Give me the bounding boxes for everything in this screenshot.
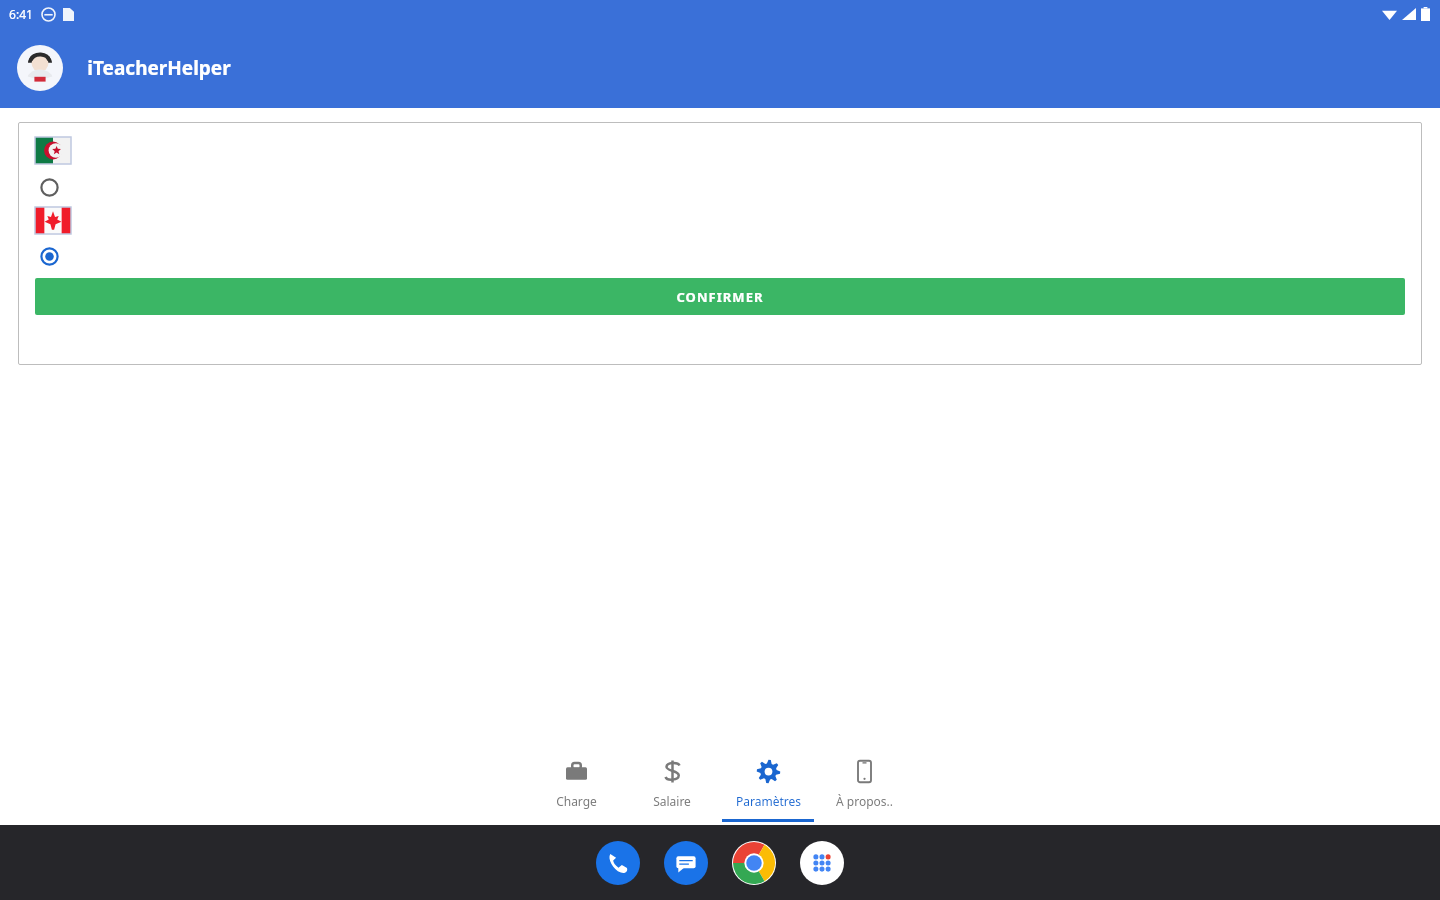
button[interactable]: À propos..: [816, 751, 912, 819]
staticText: Charge: [556, 793, 597, 809]
staticText: CONFIRMER: [676, 288, 764, 306]
staticText: 6:41: [9, 6, 33, 22]
button[interactable]: Profile avatar: [17, 45, 63, 91]
button[interactable]: Charge: [528, 751, 624, 819]
button[interactable]: Algeria: [35, 137, 71, 164]
button[interactable]: Phone: [596, 841, 640, 885]
button[interactable]: Messages: [664, 841, 708, 885]
staticText: À propos..: [836, 793, 893, 809]
button[interactable]: Select Algeria: [35, 173, 63, 201]
button[interactable]: Paramètres: [720, 751, 816, 822]
button[interactable]: CONFIRMER: [35, 278, 1405, 315]
staticText: Salaire: [653, 793, 691, 809]
button[interactable]: Canada: [35, 207, 71, 234]
staticText: Paramètres: [736, 793, 801, 809]
button[interactable]: Chrome: [732, 841, 776, 885]
button[interactable]: Salaire: [624, 751, 720, 819]
button[interactable]: Select Canada: [35, 242, 63, 270]
staticText: iTeacherHelper: [87, 55, 231, 81]
button[interactable]: All apps: [800, 841, 844, 885]
